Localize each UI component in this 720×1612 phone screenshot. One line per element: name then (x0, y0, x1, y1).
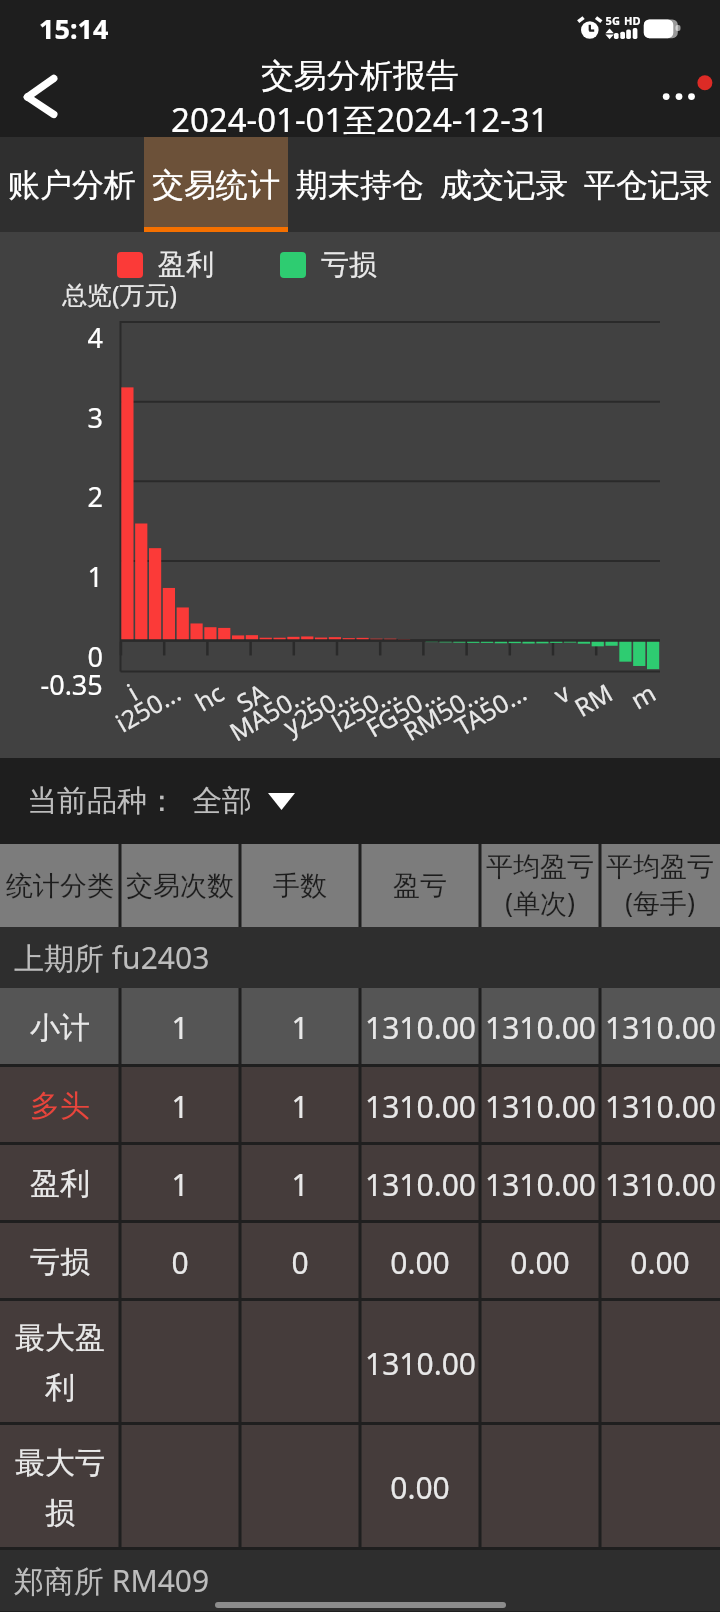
staticText: 盈利 (30, 1165, 90, 1203)
staticText: 1310.00 (605, 1086, 716, 1127)
button[interactable]: 郑商所 RM409 (14, 1550, 720, 1611)
staticText: 全部 (192, 782, 252, 820)
staticText: 交易分析报告 (261, 55, 459, 97)
staticText: 上期所 fu2403 (14, 937, 210, 978)
staticText: 盈亏 (393, 869, 447, 903)
staticText: 平均盈亏 (每手) (606, 850, 714, 921)
button[interactable]: 统计分类 (0, 844, 120, 927)
staticText: 手数 (273, 869, 327, 903)
staticText: 1 (171, 1007, 189, 1048)
staticText: 1310.00 (365, 1086, 476, 1127)
staticText: 郑商所 RM409 (14, 1560, 210, 1601)
staticText: 1310.00 (365, 1007, 476, 1048)
button[interactable]: 期末持仓 (288, 137, 432, 232)
staticText: 账户分析 (8, 165, 136, 205)
staticText: 1310.00 (485, 1007, 596, 1048)
staticText: 平均盈亏 (单次) (486, 850, 594, 921)
staticText: 1 (291, 1164, 309, 1205)
staticText: 2024-01-01至2024-12-31 (171, 97, 549, 136)
staticText: 1 (171, 1164, 189, 1205)
staticText: 0.00 (510, 1242, 570, 1283)
staticText: 小计 (30, 1009, 90, 1047)
staticText: 亏损 (321, 247, 377, 282)
button[interactable]: 成交记录 (432, 137, 576, 232)
staticText: 多头 (30, 1087, 90, 1125)
staticText: 1 (171, 1086, 189, 1127)
button[interactable]: 账户分析 (0, 137, 144, 232)
staticText: 1 (291, 1007, 309, 1048)
staticText: 1310.00 (365, 1164, 476, 1205)
staticText: 0.00 (390, 1467, 450, 1508)
staticText: 0 (291, 1242, 309, 1283)
staticText: 0.00 (390, 1242, 450, 1283)
button[interactable]: 小计 (0, 988, 720, 1067)
button[interactable]: 上期所 fu2403 (14, 927, 720, 988)
staticText: 成交记录 (440, 165, 568, 205)
staticText: 盈利 (158, 247, 214, 282)
staticText: 0 (171, 1242, 189, 1283)
staticText: 期末持仓 (296, 165, 424, 205)
button[interactable]: More options (624, 56, 720, 137)
button[interactable]: 当前品种： (27, 758, 720, 844)
staticText: 当前品种： (27, 782, 177, 820)
staticText: 1310.00 (485, 1164, 596, 1205)
button[interactable]: 手数 (240, 844, 360, 927)
staticText: 交易统计 (152, 165, 280, 205)
staticText: 1310.00 (605, 1164, 716, 1205)
staticText: 亏损 (30, 1243, 90, 1281)
staticText: 最大亏 损 (15, 1444, 105, 1532)
staticText: 统计分类 (6, 869, 114, 903)
staticText: 最大盈 利 (15, 1319, 105, 1407)
button[interactable]: 亏损 (0, 1223, 720, 1301)
button[interactable]: 盈亏 (360, 844, 480, 927)
button[interactable]: 平仓记录 (576, 137, 720, 232)
button[interactable]: 多头 (0, 1067, 720, 1145)
button[interactable]: 平均盈亏 (每手) (600, 844, 720, 927)
staticText: 总览(万元) (62, 277, 178, 311)
button[interactable]: 平均盈亏 (单次) (480, 844, 600, 927)
button[interactable]: Back (0, 56, 81, 137)
button[interactable]: 最大亏 损 (0, 1425, 720, 1550)
staticText: 交易次数 (126, 869, 234, 903)
staticText: 15:14 (39, 10, 109, 47)
staticText: 1 (291, 1086, 309, 1127)
staticText: 1310.00 (485, 1086, 596, 1127)
staticText: 平仓记录 (584, 165, 712, 205)
staticText: 1310.00 (365, 1343, 476, 1384)
button[interactable]: 交易次数 (120, 844, 240, 927)
button[interactable]: 最大盈 利 (0, 1301, 720, 1425)
button[interactable]: 盈利 (0, 1145, 720, 1223)
button[interactable]: 交易统计 (144, 137, 288, 232)
staticText: 0.00 (630, 1242, 690, 1283)
staticText: 1310.00 (605, 1007, 716, 1048)
